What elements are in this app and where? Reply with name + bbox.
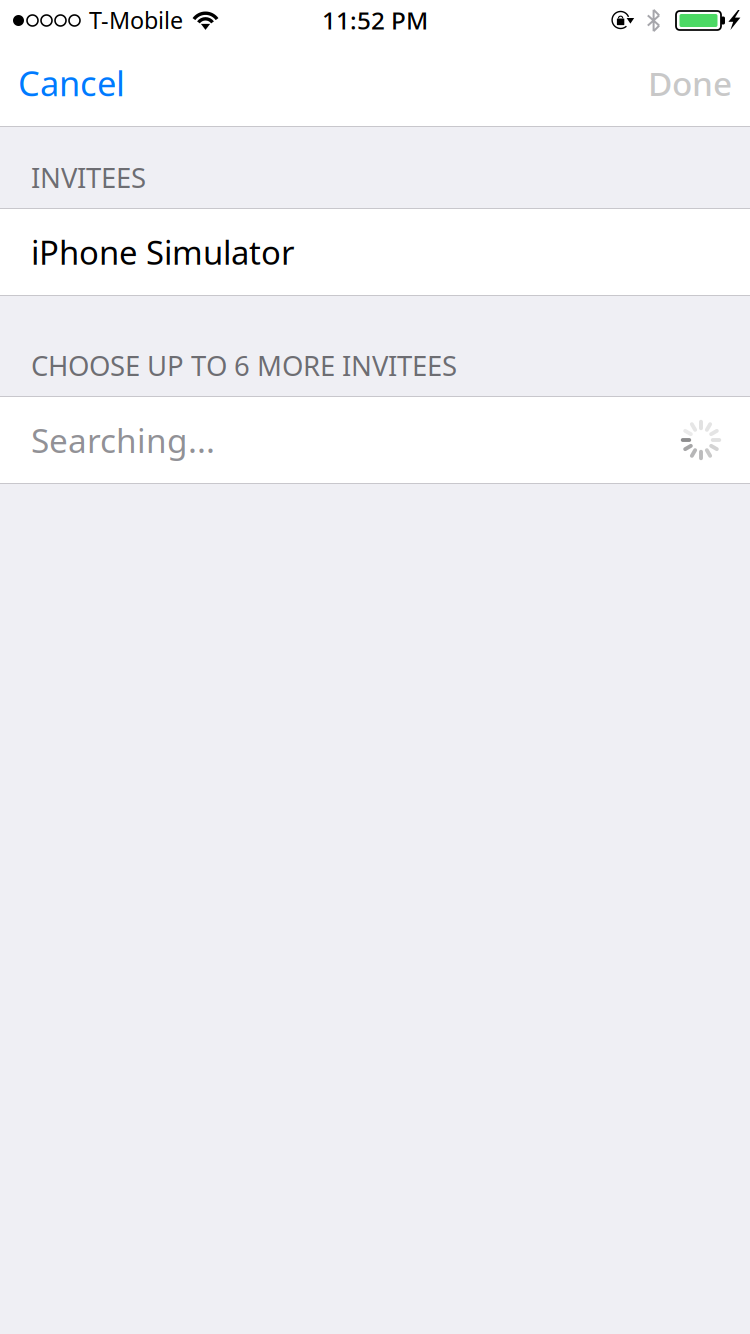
button[interactable]: Cancel: [0, 40, 154, 126]
staticText: Cancel: [18, 60, 125, 106]
staticText: T-Mobile: [89, 4, 183, 36]
staticText: CHOOSE UP TO 6 MORE INVITEES: [31, 347, 457, 384]
staticText: Done: [648, 60, 732, 106]
staticText: 11:52 PM: [322, 3, 428, 37]
button[interactable]: iPhone Simulator: [0, 209, 750, 295]
button[interactable]: Searching...: [0, 397, 750, 483]
staticText: INVITEES: [31, 159, 146, 196]
staticText: iPhone Simulator: [31, 230, 295, 274]
button[interactable]: Done: [634, 40, 750, 126]
staticText: Searching...: [31, 417, 215, 463]
